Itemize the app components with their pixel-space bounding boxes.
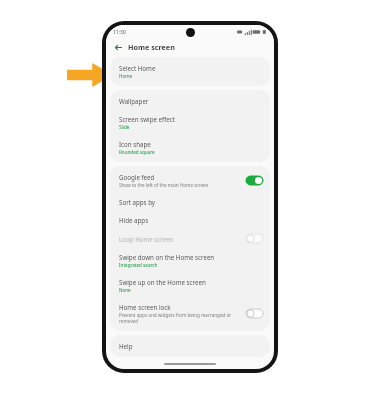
staticText: None bbox=[119, 287, 131, 293]
staticText: Home bbox=[119, 73, 133, 79]
staticText: Loop Home screen bbox=[119, 235, 174, 243]
button[interactable]: Toggle off bbox=[246, 234, 263, 243]
staticText: Swipe up on the Home screen bbox=[119, 278, 206, 286]
staticText: Google feed bbox=[119, 173, 155, 181]
button[interactable]: Swipe down on the Home screen bbox=[110, 248, 270, 273]
button[interactable]: Wallpaper bbox=[110, 92, 270, 110]
staticText: Integrated search bbox=[119, 262, 158, 268]
staticText: Sort apps by bbox=[119, 198, 156, 206]
staticText: Screen swipe effect bbox=[119, 115, 175, 123]
button[interactable]: Select Home bbox=[110, 59, 270, 84]
staticText: Swipe down on the Home screen bbox=[119, 253, 215, 261]
button[interactable]: Loop Home screen bbox=[110, 229, 270, 248]
staticText: Help bbox=[119, 342, 133, 350]
staticText: Hide apps bbox=[119, 216, 149, 224]
staticText: Show to the left of the main Home screen bbox=[119, 182, 209, 188]
staticText: 11:30 bbox=[113, 29, 126, 36]
button[interactable]: Toggle off bbox=[246, 309, 263, 318]
staticText: Wallpaper bbox=[119, 97, 149, 105]
button[interactable]: Help bbox=[110, 337, 270, 355]
staticText: Select Home bbox=[119, 64, 156, 72]
staticText: Icon shape bbox=[119, 140, 151, 148]
button[interactable]: Hide apps bbox=[110, 211, 270, 229]
button[interactable]: Back bbox=[113, 42, 123, 52]
staticText: Slide bbox=[119, 124, 130, 130]
staticText: Rounded square bbox=[119, 149, 155, 155]
button[interactable]: Swipe up on the Home screen bbox=[110, 273, 270, 298]
button[interactable]: Screen swipe effect bbox=[110, 110, 270, 135]
staticText: Home screen lock bbox=[119, 303, 171, 311]
button[interactable]: Google feed bbox=[110, 168, 270, 193]
staticText: Prevent apps and widgets from being rear… bbox=[119, 312, 241, 324]
other: Pointer arrow bbox=[67, 63, 113, 87]
staticText: Home screen bbox=[128, 42, 175, 52]
button[interactable]: Toggle on bbox=[246, 176, 263, 185]
button[interactable]: Home screen lock bbox=[110, 298, 270, 329]
button[interactable]: Icon shape bbox=[110, 135, 270, 160]
button[interactable]: Sort apps by bbox=[110, 193, 270, 211]
